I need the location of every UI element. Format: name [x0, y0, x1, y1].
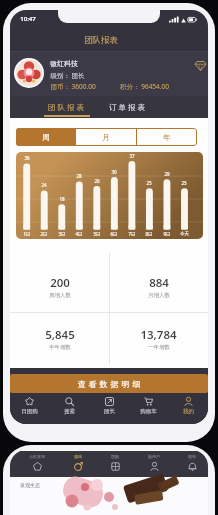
staticText: 积分： 96454.00: [120, 82, 169, 91]
staticText: 26: [94, 178, 100, 184]
staticText: 7日: [128, 231, 136, 237]
staticText: 29: [164, 171, 170, 177]
staticText: 周: [42, 133, 50, 142]
staticText: 微红科技: [50, 59, 78, 68]
staticText: 18: [59, 196, 65, 202]
staticText: 我的: [183, 408, 194, 415]
button[interactable]: 200: [10, 274, 109, 310]
staticText: 月增人数: [148, 292, 170, 299]
staticText: 30: [111, 169, 117, 175]
staticText: 小区发现: [29, 454, 45, 459]
staticText: 月: [102, 133, 110, 142]
staticText: 2日: [40, 231, 48, 237]
button[interactable]: 团长: [92, 396, 126, 420]
staticText: 半年增数: [49, 344, 71, 351]
staticText: 200: [50, 275, 70, 291]
button[interactable]: 团购: [99, 452, 131, 477]
staticText: 搜索: [64, 408, 75, 415]
staticText: 日团购: [21, 408, 38, 415]
staticText: 查看数据明细: [76, 379, 142, 389]
staticText: 通知: [188, 454, 196, 459]
button[interactable]: 月: [76, 128, 136, 146]
button[interactable]: 5,845: [10, 326, 109, 362]
staticText: 团队报表: [84, 35, 118, 46]
staticText: 团长: [104, 408, 115, 415]
staticText: 6日: [110, 231, 118, 237]
staticText: 年: [163, 133, 171, 142]
button[interactable]: 查看数据明细: [10, 374, 208, 393]
staticText: 10:47: [20, 15, 36, 23]
staticText: 团币： 3600.00: [50, 82, 96, 91]
staticText: 28: [76, 173, 82, 179]
button[interactable]: 13,784: [109, 326, 208, 362]
staticText: 团购: [111, 454, 119, 459]
button[interactable]: 小区发现: [21, 452, 53, 477]
staticText: 5日: [93, 231, 101, 237]
staticText: 37: [129, 153, 135, 159]
button[interactable]: 购物车: [131, 396, 165, 420]
staticText: 今天: [180, 231, 189, 237]
staticText: 884: [149, 275, 169, 291]
staticText: 25: [146, 180, 152, 186]
button[interactable]: 周: [16, 128, 76, 146]
button[interactable]: 通知: [176, 452, 208, 477]
staticText: 发现生态: [20, 482, 40, 488]
button[interactable]: 精选: [62, 452, 94, 477]
button[interactable]: 搜索: [52, 396, 86, 420]
staticText: 24: [41, 182, 47, 188]
staticText: 购物车: [140, 408, 157, 415]
staticText: 一年增数: [148, 344, 170, 351]
staticText: 1日: [23, 231, 31, 237]
staticText: 精选: [74, 454, 82, 459]
staticText: 13,784: [140, 327, 177, 343]
staticText: 周增人数: [49, 292, 71, 299]
button[interactable]: 我的: [171, 396, 205, 420]
staticText: 团队报表: [47, 103, 85, 112]
staticText: 25: [181, 180, 187, 186]
staticText: 3日: [58, 231, 66, 237]
staticText: 9日: [163, 231, 171, 237]
staticText: 36: [24, 155, 30, 161]
button[interactable]: 年: [137, 128, 197, 146]
staticText: 4日: [75, 231, 83, 237]
button[interactable]: 日团购: [12, 396, 46, 420]
staticText: 订单报表: [108, 103, 146, 112]
button[interactable]: 微红科技: [10, 52, 208, 96]
button[interactable]: 新用户: [138, 452, 170, 477]
button[interactable]: 订单报表: [97, 96, 157, 118]
staticText: 5,845: [45, 327, 75, 343]
staticText: 级别： 团长: [50, 71, 85, 80]
staticText: 新用户: [148, 454, 160, 459]
button[interactable]: 团队报表: [36, 96, 96, 118]
staticText: 8日: [145, 231, 153, 237]
button[interactable]: 884: [109, 274, 208, 310]
